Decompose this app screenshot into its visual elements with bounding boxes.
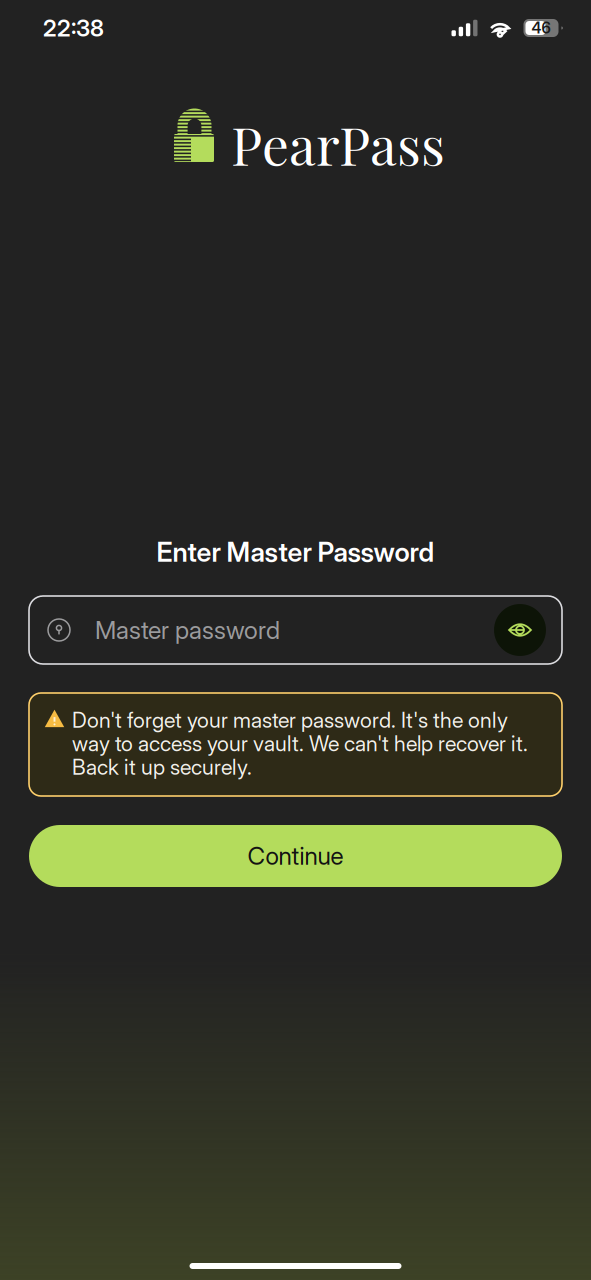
- staticText: 46: [531, 19, 550, 37]
- staticText: Don't forget your master password. It's …: [72, 707, 528, 780]
- button[interactable]: Show password: [494, 604, 546, 656]
- staticText: Master password: [95, 615, 280, 645]
- staticText: 22:38: [43, 14, 104, 42]
- button[interactable]: Continue: [29, 825, 562, 887]
- staticText: Continue: [247, 841, 343, 871]
- staticText: Enter Master Password: [156, 536, 434, 568]
- staticText: PearPass: [231, 108, 445, 179]
